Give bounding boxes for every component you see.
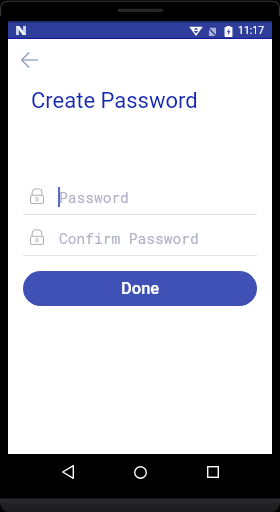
staticText: Done [121,279,160,298]
button[interactable]: Back [13,44,45,76]
staticText: Create Password [31,88,198,114]
staticText: Password [59,188,129,207]
staticText: Confirm Password [59,229,199,248]
button[interactable]: Done [23,271,257,306]
button[interactable]: Recent apps [197,456,229,488]
staticText: 11:17 [238,24,265,36]
button[interactable]: Back [52,456,84,488]
button[interactable]: Home [124,456,156,488]
